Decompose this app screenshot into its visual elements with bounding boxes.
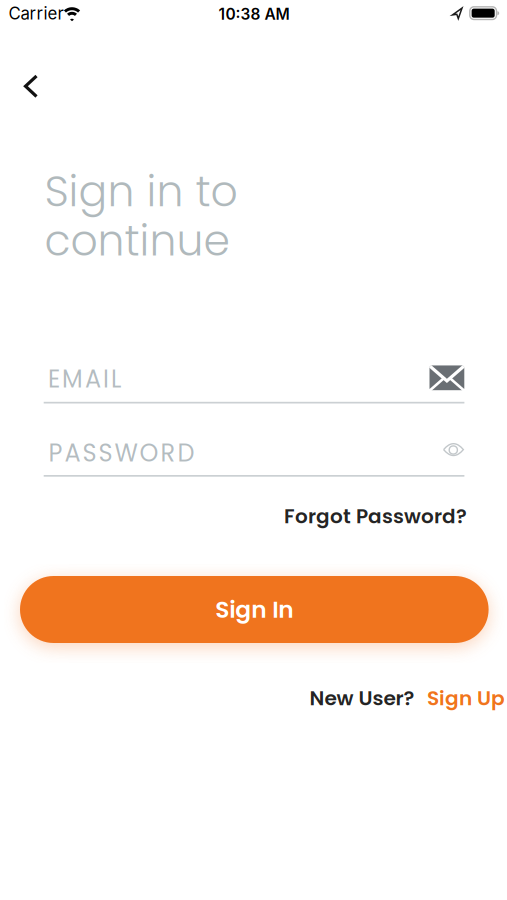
button[interactable]: Sign Up (427, 684, 505, 712)
button[interactable]: Show password (443, 442, 464, 457)
staticText: Sign In (215, 593, 293, 626)
staticText: PASSWORD (48, 436, 202, 470)
staticText: Forgot Password? (284, 502, 467, 530)
staticText: continue (44, 211, 229, 270)
staticText: New User? (309, 684, 414, 712)
button[interactable]: Forgot Password? (284, 502, 467, 530)
button[interactable]: Back (9, 63, 53, 107)
staticText: 10:38 AM (218, 5, 289, 23)
staticText: Carrier (8, 3, 63, 24)
staticText: EMAIL (48, 362, 129, 396)
button[interactable]: Sign In (20, 576, 489, 643)
staticText: Sign Up (427, 684, 505, 712)
staticText: Sign in to (44, 162, 237, 221)
